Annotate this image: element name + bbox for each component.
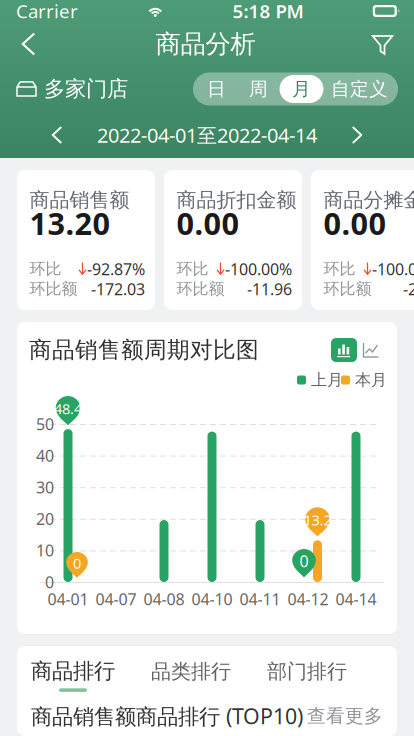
staticText: 04-10 [191,588,232,610]
button[interactable]: Bar chart [331,338,357,362]
staticText: -100.00% [225,258,292,280]
staticText: 04-08 [143,588,184,610]
staticText: 13.20 [29,203,110,243]
staticText: 商品销售额 [29,188,129,212]
staticText: 环比额 [176,279,224,299]
staticText: 商品折扣金额 [176,188,296,212]
staticText: 商品销售额周期对比图 [29,336,259,364]
staticText: 环比 [323,259,355,279]
staticText: 5:18 PM [232,0,303,23]
staticText: 本月 [355,370,387,390]
button[interactable]: 自定义 [323,75,395,103]
staticText: 04-12 [287,588,328,610]
button[interactable]: 品类排行 [151,659,231,691]
staticText: 环比额 [323,279,371,299]
staticText: -11.96 [247,278,292,300]
staticText: 2022-04-01至2022-04-14 [97,122,317,148]
staticText: 0.00 [323,203,386,243]
staticText: 部门排行 [267,659,347,684]
button[interactable]: Next period [338,117,376,153]
staticText: 0 [299,550,308,572]
staticText: 查看更多 [307,704,383,727]
staticText: 30 [36,477,54,498]
staticText: 0 [45,571,54,593]
button[interactable]: 商品排行 [31,658,115,692]
staticText: 04-01 [47,588,88,610]
button[interactable]: Filter [360,22,405,66]
staticText: -2.31 [403,278,414,300]
staticText: 环比额 [29,279,77,299]
button[interactable]: 部门排行 [267,659,347,691]
staticText: -100.00% [372,258,414,280]
staticText: 商品分摊金额 [323,188,414,212]
staticText: Carrier [16,0,78,23]
staticText: 商品销售额商品排行 (TOP10) [31,702,303,730]
staticText: 04-07 [95,588,136,610]
staticText: 04-14 [335,588,376,610]
staticText: 多家门店 [44,76,128,102]
staticText: 0 [73,553,81,573]
staticText: 上月 [311,370,343,390]
staticText: 04-11 [239,588,280,610]
button[interactable]: 日 [195,75,237,103]
staticText: 日 [207,77,226,100]
button[interactable]: 多家门店 [16,76,128,102]
staticText: 40 [36,445,54,466]
staticText: -92.87% [87,258,145,280]
button[interactable]: 月 [279,75,323,103]
staticText: 商品分析 [155,28,255,59]
button[interactable]: Line chart [357,338,385,362]
staticText: -172.03 [91,278,145,300]
staticText: 自定义 [331,77,388,100]
button[interactable]: 周 [237,75,279,103]
button[interactable]: 查看更多 [307,704,383,727]
staticText: 50 [36,413,54,435]
staticText: 商品排行 [31,658,115,684]
staticText: 10 [36,540,54,561]
staticText: 48.4 [54,399,82,418]
staticText: 13.2 [303,510,331,529]
staticText: 0.00 [176,203,239,243]
button[interactable]: Back [6,22,51,66]
staticText: 周 [249,77,268,100]
button[interactable]: Previous period [38,117,76,153]
staticText: 环比 [176,259,208,279]
staticText: 品类排行 [151,659,231,684]
staticText: 月 [292,77,311,100]
staticText: 20 [36,508,54,529]
staticText: 环比 [29,259,61,279]
